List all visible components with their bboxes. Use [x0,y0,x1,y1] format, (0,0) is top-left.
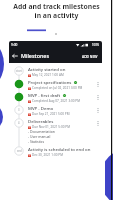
staticText: Milestones [21,52,50,59]
staticText: Completed on Jul 02, 2021 3:00 PM [32,86,83,90]
staticText: Project specifications [28,79,72,85]
staticText: end [17,149,22,153]
staticText: - User manual [28,134,51,139]
staticText: Add and track milestones in an activity [0,2,113,20]
staticText: Due Sep 21, 2021 5:00 PM [32,112,70,116]
button[interactable]: ADD NEW [81,52,99,60]
button[interactable]: Back [11,52,19,60]
staticText: MVP - Demo [28,105,54,111]
staticText: MVP - first draft [28,92,61,98]
button[interactable]: More options [93,79,102,88]
staticText: - Documentation [28,129,55,134]
staticText: 100% [92,43,100,47]
staticText: Activity started on [28,66,66,72]
button[interactable]: start [9,66,102,79]
button[interactable]: More options [93,92,102,101]
staticText: - Statistics [28,139,45,144]
staticText: Dec 30, 2021 1:00 PM [32,153,63,157]
staticText: 9:00 [11,43,18,47]
button[interactable]: More options [93,118,102,127]
button[interactable]: More options [93,105,102,114]
staticText: 4 [18,121,20,125]
staticText: ADD NEW [82,54,98,58]
staticText: Deliverables [28,118,54,124]
staticText: start [16,69,22,73]
staticText: Completed Aug 07, 2021 3:00 PM [32,99,81,103]
staticText: May 12, 2021 1:00 AM [32,73,64,77]
staticText: 3 [18,108,20,112]
staticText: Activity is scheduled to end on [28,146,91,152]
button[interactable]: end [9,146,102,159]
button[interactable]: Project specifications [9,79,102,92]
staticText: Due Nov 01, 2021 5:00 PM [32,125,70,129]
button[interactable]: 3 [9,105,102,118]
button[interactable]: MVP - first draft [9,92,102,105]
button[interactable]: 4 [9,118,102,146]
